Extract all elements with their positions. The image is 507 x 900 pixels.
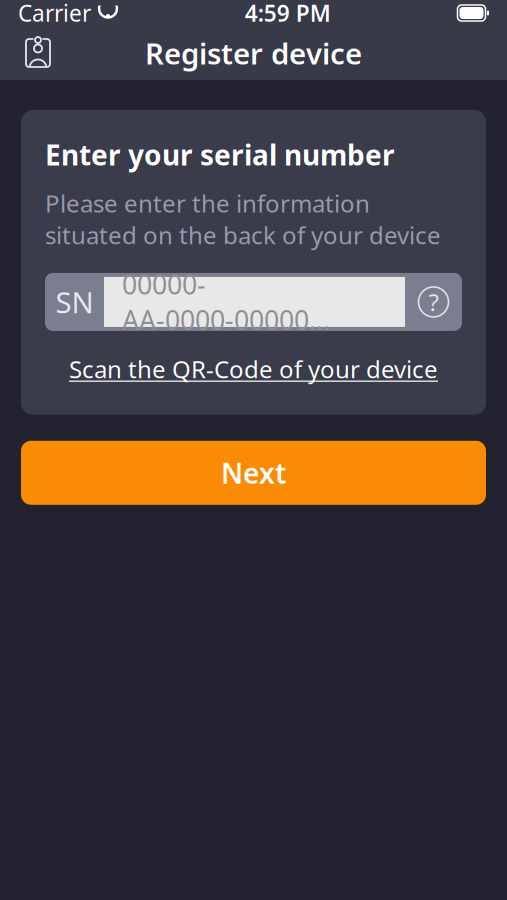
button[interactable]: Profile (12, 26, 64, 80)
button[interactable]: Scan the QR-Code of your device (45, 345, 462, 393)
button[interactable]: Next (21, 441, 486, 505)
staticText: Register device (145, 33, 362, 72)
staticText: Carrier (18, 0, 91, 28)
staticText: Next (221, 454, 286, 491)
staticText: 4:59 PM (245, 0, 331, 28)
button[interactable]: Help about serial number (405, 273, 462, 331)
staticText: SN (55, 282, 93, 321)
staticText: ? (428, 286, 438, 318)
staticText: Please enter the information situated on… (45, 187, 441, 251)
staticText: Scan the QR-Code of your device (69, 353, 438, 385)
staticText: Enter your serial number (45, 136, 395, 173)
staticText: 00000-AA-0000-00000... (122, 266, 330, 337)
